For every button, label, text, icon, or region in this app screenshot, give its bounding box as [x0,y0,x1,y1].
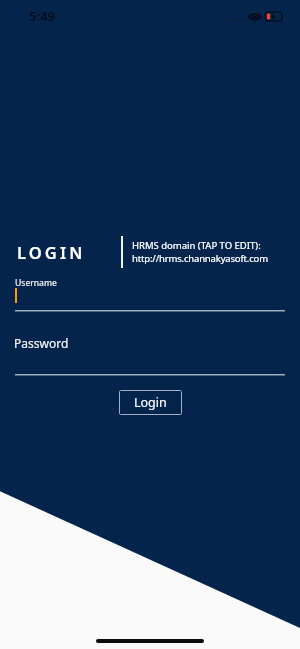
button[interactable]: HRMS domain (TAP TO EDIT): [132,239,272,265]
button[interactable]: Login [119,390,182,415]
staticText: LOGIN [17,241,86,263]
other: Home [96,639,204,643]
other: Signal, Wi-Fi and battery status [228,8,288,24]
button[interactable]: Username [15,272,285,312]
button[interactable]: Password [15,330,285,377]
staticText: HRMS domain (TAP TO EDIT): [132,239,261,252]
staticText: Login [134,394,167,411]
staticText: Username [15,277,57,289]
staticText: Password [14,335,69,351]
staticText: http://hrms.channakyasoft.com [132,252,268,265]
staticText: 5:49 [29,7,55,25]
